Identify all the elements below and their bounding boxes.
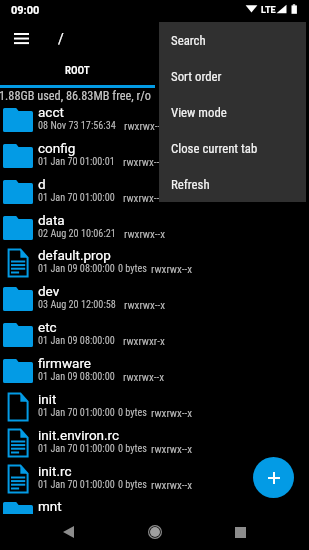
- staticText: 09:00: [11, 4, 40, 17]
- staticText: 01 Jan 09 08:00:00: [38, 371, 115, 383]
- staticText: rwxrwx--x: [124, 228, 166, 241]
- button[interactable]: d: [0, 174, 309, 210]
- button[interactable]: Search: [159, 22, 306, 58]
- staticText: ROOT: [65, 64, 90, 77]
- staticText: 01 Jan 70 01:00:01: [38, 156, 115, 168]
- button[interactable]: data: [0, 210, 309, 246]
- staticText: rwxrwx--x: [151, 263, 193, 276]
- staticText: 01 Jan 70 01:00:00: [38, 443, 115, 455]
- button[interactable]: default.prop: [0, 245, 309, 281]
- staticText: rwxrwx--x: [123, 192, 165, 205]
- button[interactable]: Back: [46, 514, 91, 550]
- button[interactable]: acct: [0, 102, 309, 138]
- staticText: 01 Jan 70 01:00:00: [38, 479, 115, 491]
- button[interactable]: ROOT: [0, 57, 155, 88]
- staticText: default.prop: [38, 247, 111, 263]
- staticText: etc: [38, 319, 57, 335]
- staticText: rwxrwx--x: [151, 443, 193, 456]
- staticText: View mode: [171, 105, 227, 120]
- staticText: 0 bytes: [118, 407, 148, 419]
- button[interactable]: Sort order: [159, 58, 306, 94]
- staticText: rwxrwx--x: [124, 299, 166, 312]
- staticText: 0 bytes: [118, 443, 148, 455]
- staticText: init.rc: [38, 463, 72, 479]
- staticText: firmware: [38, 355, 91, 371]
- staticText: init.environ.rc: [38, 427, 120, 443]
- staticText: rwxrwx--x: [123, 156, 165, 169]
- button[interactable]: dev: [0, 281, 309, 317]
- button[interactable]: Recents: [218, 514, 263, 550]
- staticText: 01 Jan 70 01:00:00: [38, 407, 115, 419]
- staticText: Refresh: [171, 177, 210, 192]
- button[interactable]: init.rc: [0, 461, 309, 497]
- button[interactable]: Close current tab: [159, 130, 306, 166]
- staticText: config: [38, 140, 76, 156]
- button[interactable]: View mode: [159, 94, 306, 130]
- staticText: rwxrwx--x: [124, 120, 166, 133]
- button[interactable]: init.environ.rc: [0, 425, 309, 461]
- button[interactable]: Refresh: [159, 166, 306, 202]
- staticText: 1.88GB used, 86.83MB free, r/o: [0, 89, 152, 103]
- staticText: mnt: [38, 498, 62, 514]
- staticText: 01 Jan 09 08:00:00: [38, 263, 115, 275]
- button[interactable]: etc: [0, 317, 309, 353]
- button[interactable]: config: [0, 138, 309, 174]
- button[interactable]: firmware: [0, 353, 309, 389]
- button[interactable]: Home: [132, 514, 177, 550]
- staticText: rwxrwx--x: [123, 371, 165, 384]
- staticText: /: [58, 31, 64, 47]
- staticText: Search: [171, 33, 206, 48]
- staticText: rwxrwxr-x: [123, 335, 165, 348]
- staticText: 02 Aug 20 10:06:21: [38, 228, 116, 240]
- staticText: d: [38, 176, 46, 192]
- staticText: Close current tab: [171, 141, 258, 156]
- staticText: LTE: [261, 5, 276, 16]
- staticText: Sort order: [171, 69, 222, 84]
- staticText: rwxrwx--x: [151, 407, 193, 420]
- staticText: acct: [38, 104, 64, 120]
- staticText: 01 Jan 09 08:00:00: [38, 335, 115, 347]
- staticText: 03 Aug 20 12:00:58: [38, 299, 116, 311]
- staticText: init: [38, 391, 57, 407]
- staticText: 0 bytes: [118, 479, 148, 491]
- staticText: 01 Jan 70 01:00:00: [38, 192, 115, 204]
- staticText: 08 Nov 73 17:56:34: [38, 120, 116, 132]
- staticText: 0 bytes: [118, 263, 148, 275]
- button[interactable]: mnt: [0, 496, 309, 514]
- button[interactable]: Menu: [7, 24, 36, 53]
- staticText: data: [38, 212, 65, 228]
- staticText: rwxrwx--x: [151, 479, 193, 492]
- button[interactable]: init: [0, 389, 309, 425]
- staticText: dev: [38, 283, 60, 299]
- button[interactable]: Add: [253, 457, 294, 498]
